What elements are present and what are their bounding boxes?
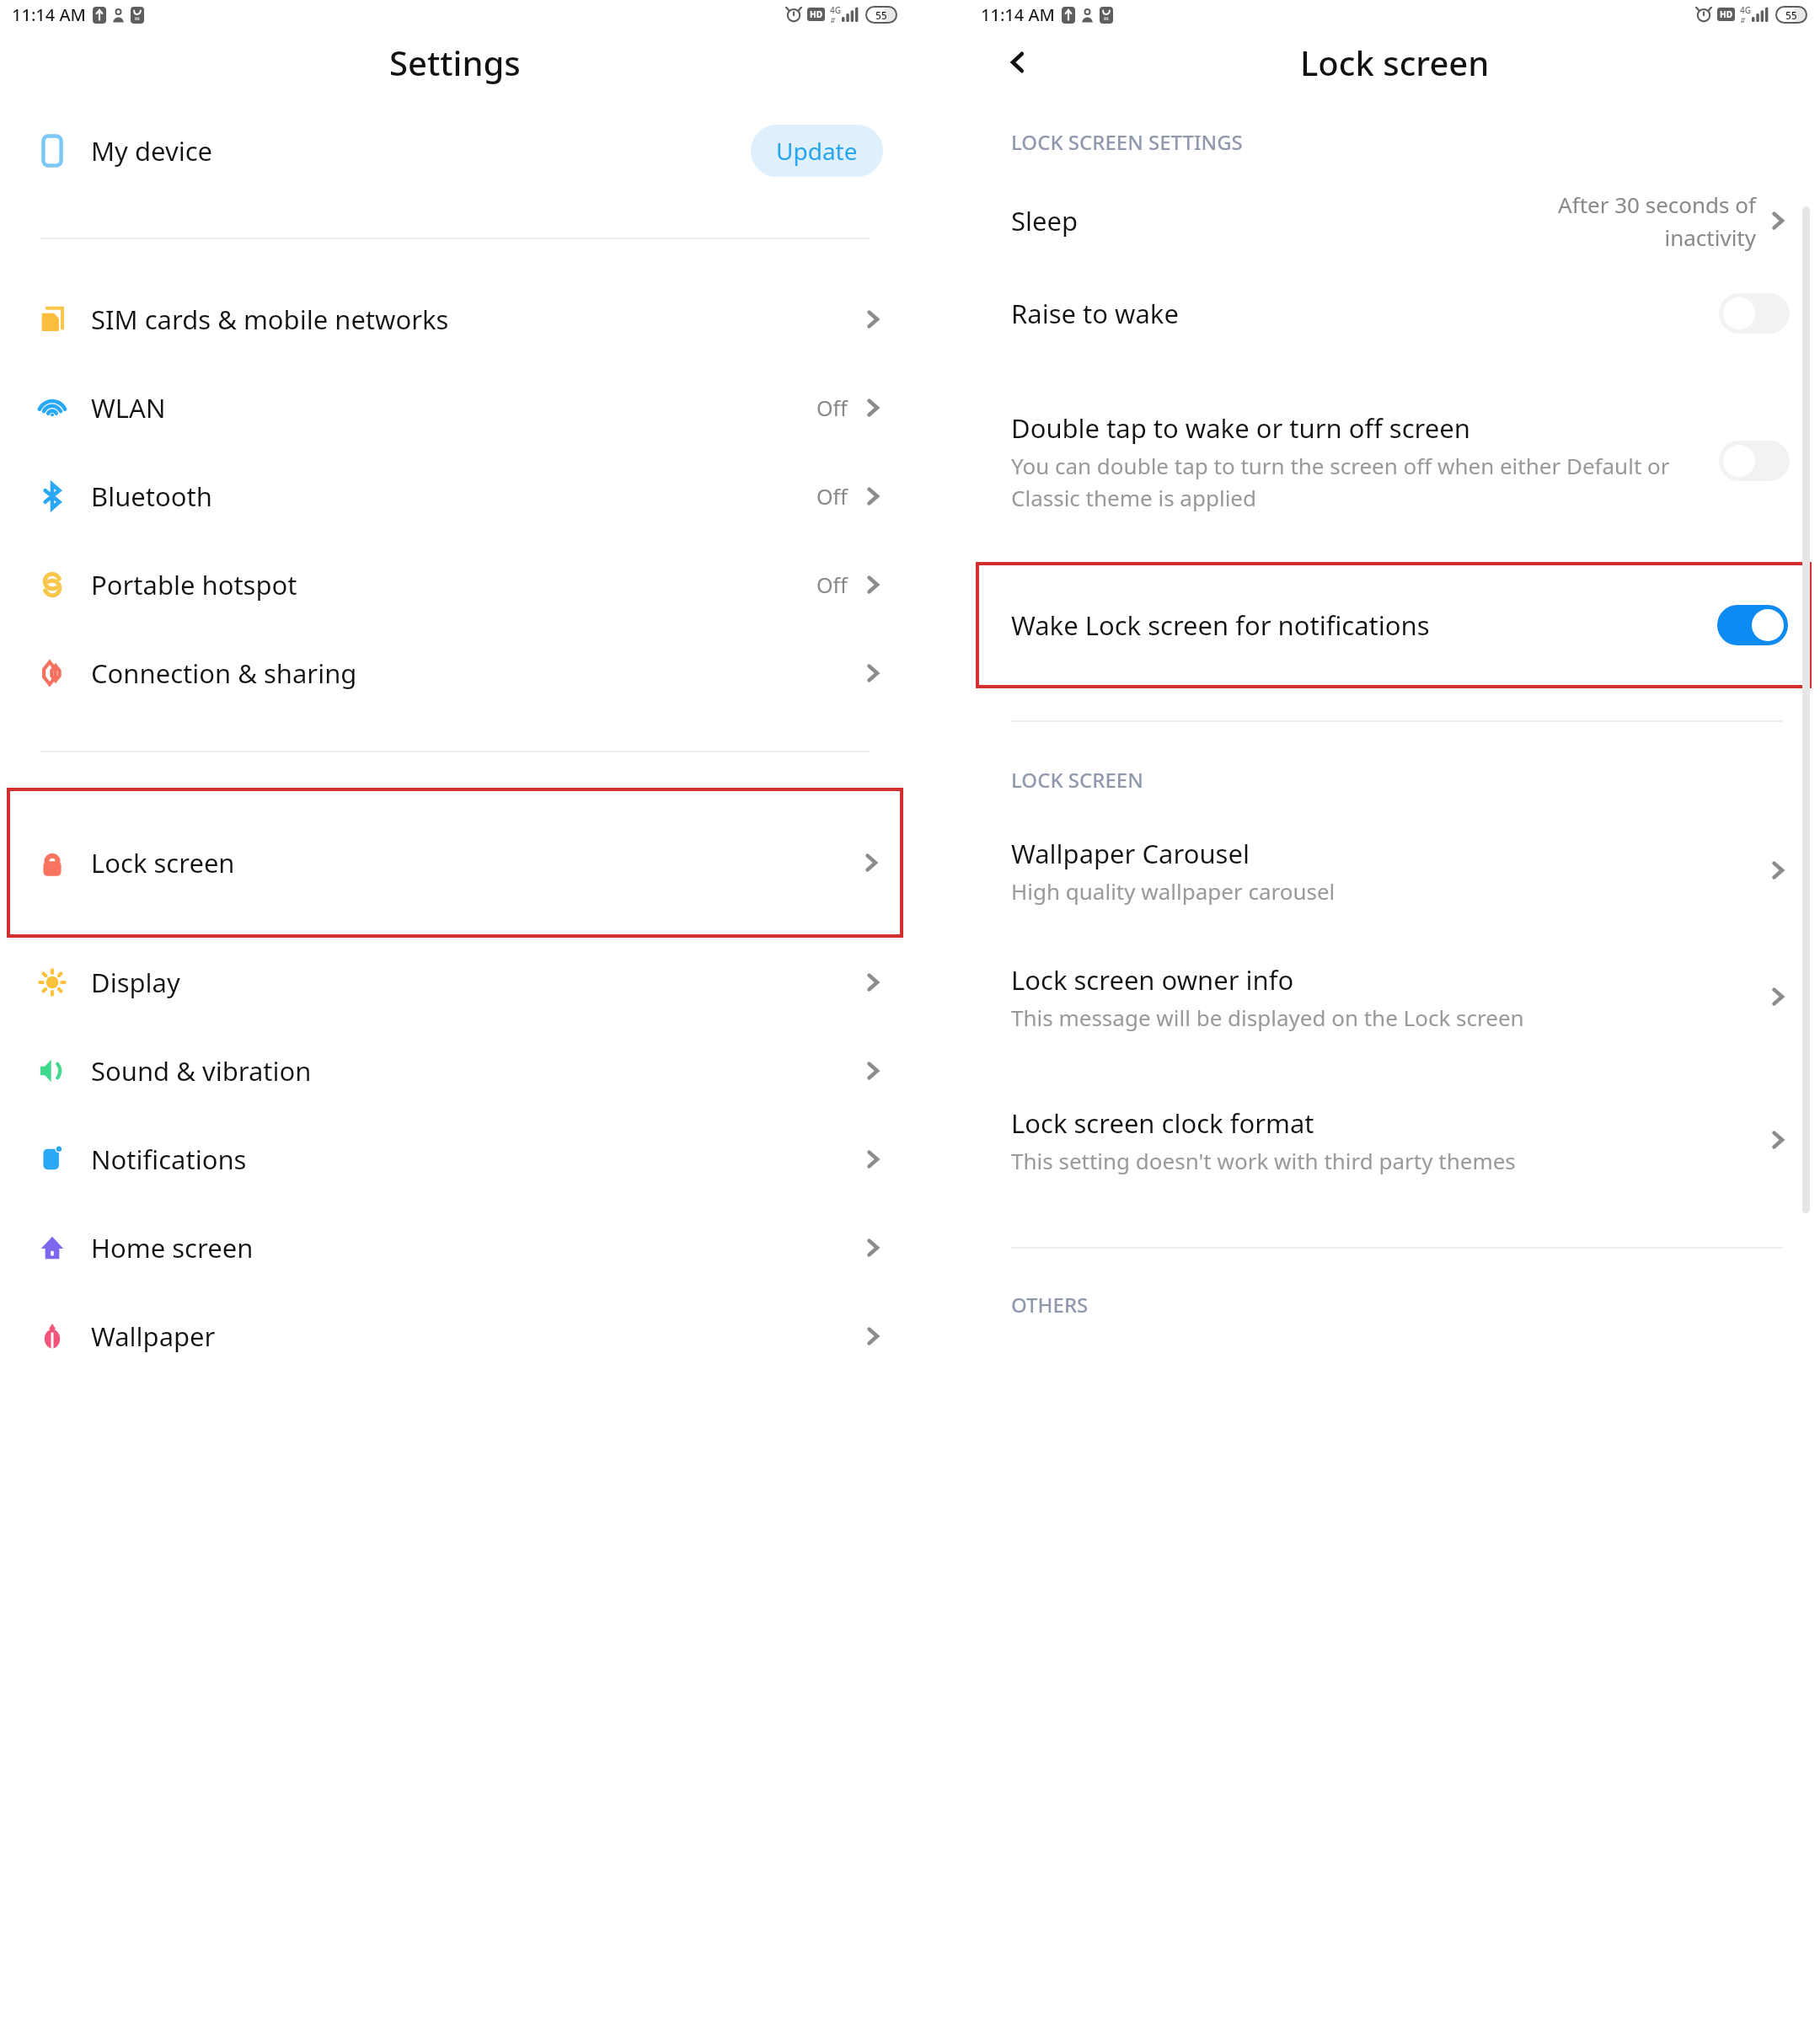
staticText: You can double tap to turn the screen of… <box>1011 451 1707 512</box>
staticText: Lock screen clock format <box>1011 1105 1314 1141</box>
staticText: Wallpaper Carousel <box>1011 836 1250 871</box>
staticText: Lock screen owner info <box>1011 962 1294 998</box>
staticText: Bluetooth <box>91 479 816 514</box>
button[interactable]: Raise to wake <box>1719 293 1790 334</box>
staticText: 11:14 AM <box>12 3 86 26</box>
staticText: SIM cards & mobile networks <box>91 302 861 337</box>
button[interactable]: Bluetooth <box>0 452 910 540</box>
staticText: LOCK SCREEN SETTINGS <box>1011 128 1243 156</box>
button[interactable]: Wallpaper Carousel <box>969 816 1820 925</box>
staticText: Update <box>776 135 858 167</box>
button[interactable]: Wake Lock screen for notifications <box>1717 605 1788 645</box>
staticText: Display <box>91 965 861 1000</box>
staticText: Lock screen <box>91 845 859 880</box>
staticText: This message will be displayed on the Lo… <box>1011 1003 1524 1032</box>
staticText: My device <box>91 133 751 168</box>
staticText: Wallpaper <box>91 1319 861 1354</box>
button[interactable]: Portable hotspot <box>0 540 910 629</box>
button[interactable]: Sound & vibration <box>0 1026 910 1115</box>
staticText: Wake Lock screen for notifications <box>1011 607 1717 643</box>
staticText: ⇵ <box>1740 17 1746 24</box>
staticText: Off <box>816 570 848 599</box>
button[interactable]: WLAN <box>0 363 910 452</box>
button[interactable]: Notifications <box>0 1115 910 1203</box>
button[interactable]: Connection & sharing <box>0 629 910 717</box>
staticText: Off <box>816 393 848 422</box>
staticText: High quality wallpaper carousel <box>1011 876 1336 906</box>
button[interactable]: Sleep <box>969 174 1820 267</box>
staticText: This setting doesn't work with third par… <box>1011 1146 1516 1175</box>
staticText: Double tap to wake or turn off screen <box>1011 410 1470 446</box>
staticText: 4G <box>830 4 841 16</box>
button[interactable]: Lock screen <box>7 788 903 938</box>
staticText: Off <box>816 482 848 511</box>
staticText: Lock screen <box>1300 40 1490 85</box>
button[interactable]: Wake Lock screen for notifications <box>976 562 1812 688</box>
staticText: Settings <box>389 40 521 85</box>
staticText: 11:14 AM <box>981 3 1055 26</box>
staticText: Sleep <box>1011 203 1079 238</box>
button[interactable]: My device <box>0 96 910 206</box>
staticText: Raise to wake <box>1011 296 1179 331</box>
staticText: Notifications <box>91 1142 861 1177</box>
button[interactable]: Lock screen owner info <box>969 925 1820 1068</box>
staticText: Portable hotspot <box>91 567 816 602</box>
button[interactable]: Wallpaper <box>0 1292 910 1380</box>
staticText: Connection & sharing <box>91 655 861 691</box>
staticText: Sound & vibration <box>91 1053 861 1089</box>
button[interactable]: Lock screen clock format <box>969 1068 1820 1212</box>
staticText: 55 <box>1785 8 1797 22</box>
staticText: HD <box>1720 8 1732 20</box>
button[interactable]: Display <box>0 938 910 1026</box>
staticText: 55 <box>875 8 887 22</box>
button[interactable]: Double tap to wake or turn off screen <box>1719 441 1790 481</box>
staticText: WLAN <box>91 390 816 425</box>
staticText: Home screen <box>91 1230 861 1265</box>
staticText: ⇵ <box>830 17 836 24</box>
button[interactable]: Back <box>994 39 1041 86</box>
button[interactable]: Raise to wake <box>969 267 1820 360</box>
staticText: 4G <box>1740 4 1751 16</box>
button[interactable]: Home screen <box>0 1203 910 1292</box>
staticText: LOCK SCREEN <box>1011 766 1143 794</box>
staticText: HD <box>810 8 822 20</box>
staticText: After 30 seconds of inactivity <box>1545 190 1756 253</box>
button[interactable]: Update <box>751 125 883 177</box>
button[interactable]: SIM cards & mobile networks <box>0 275 910 363</box>
button[interactable]: Double tap to wake or turn off screen <box>969 360 1820 562</box>
staticText: OTHERS <box>1011 1291 1089 1319</box>
